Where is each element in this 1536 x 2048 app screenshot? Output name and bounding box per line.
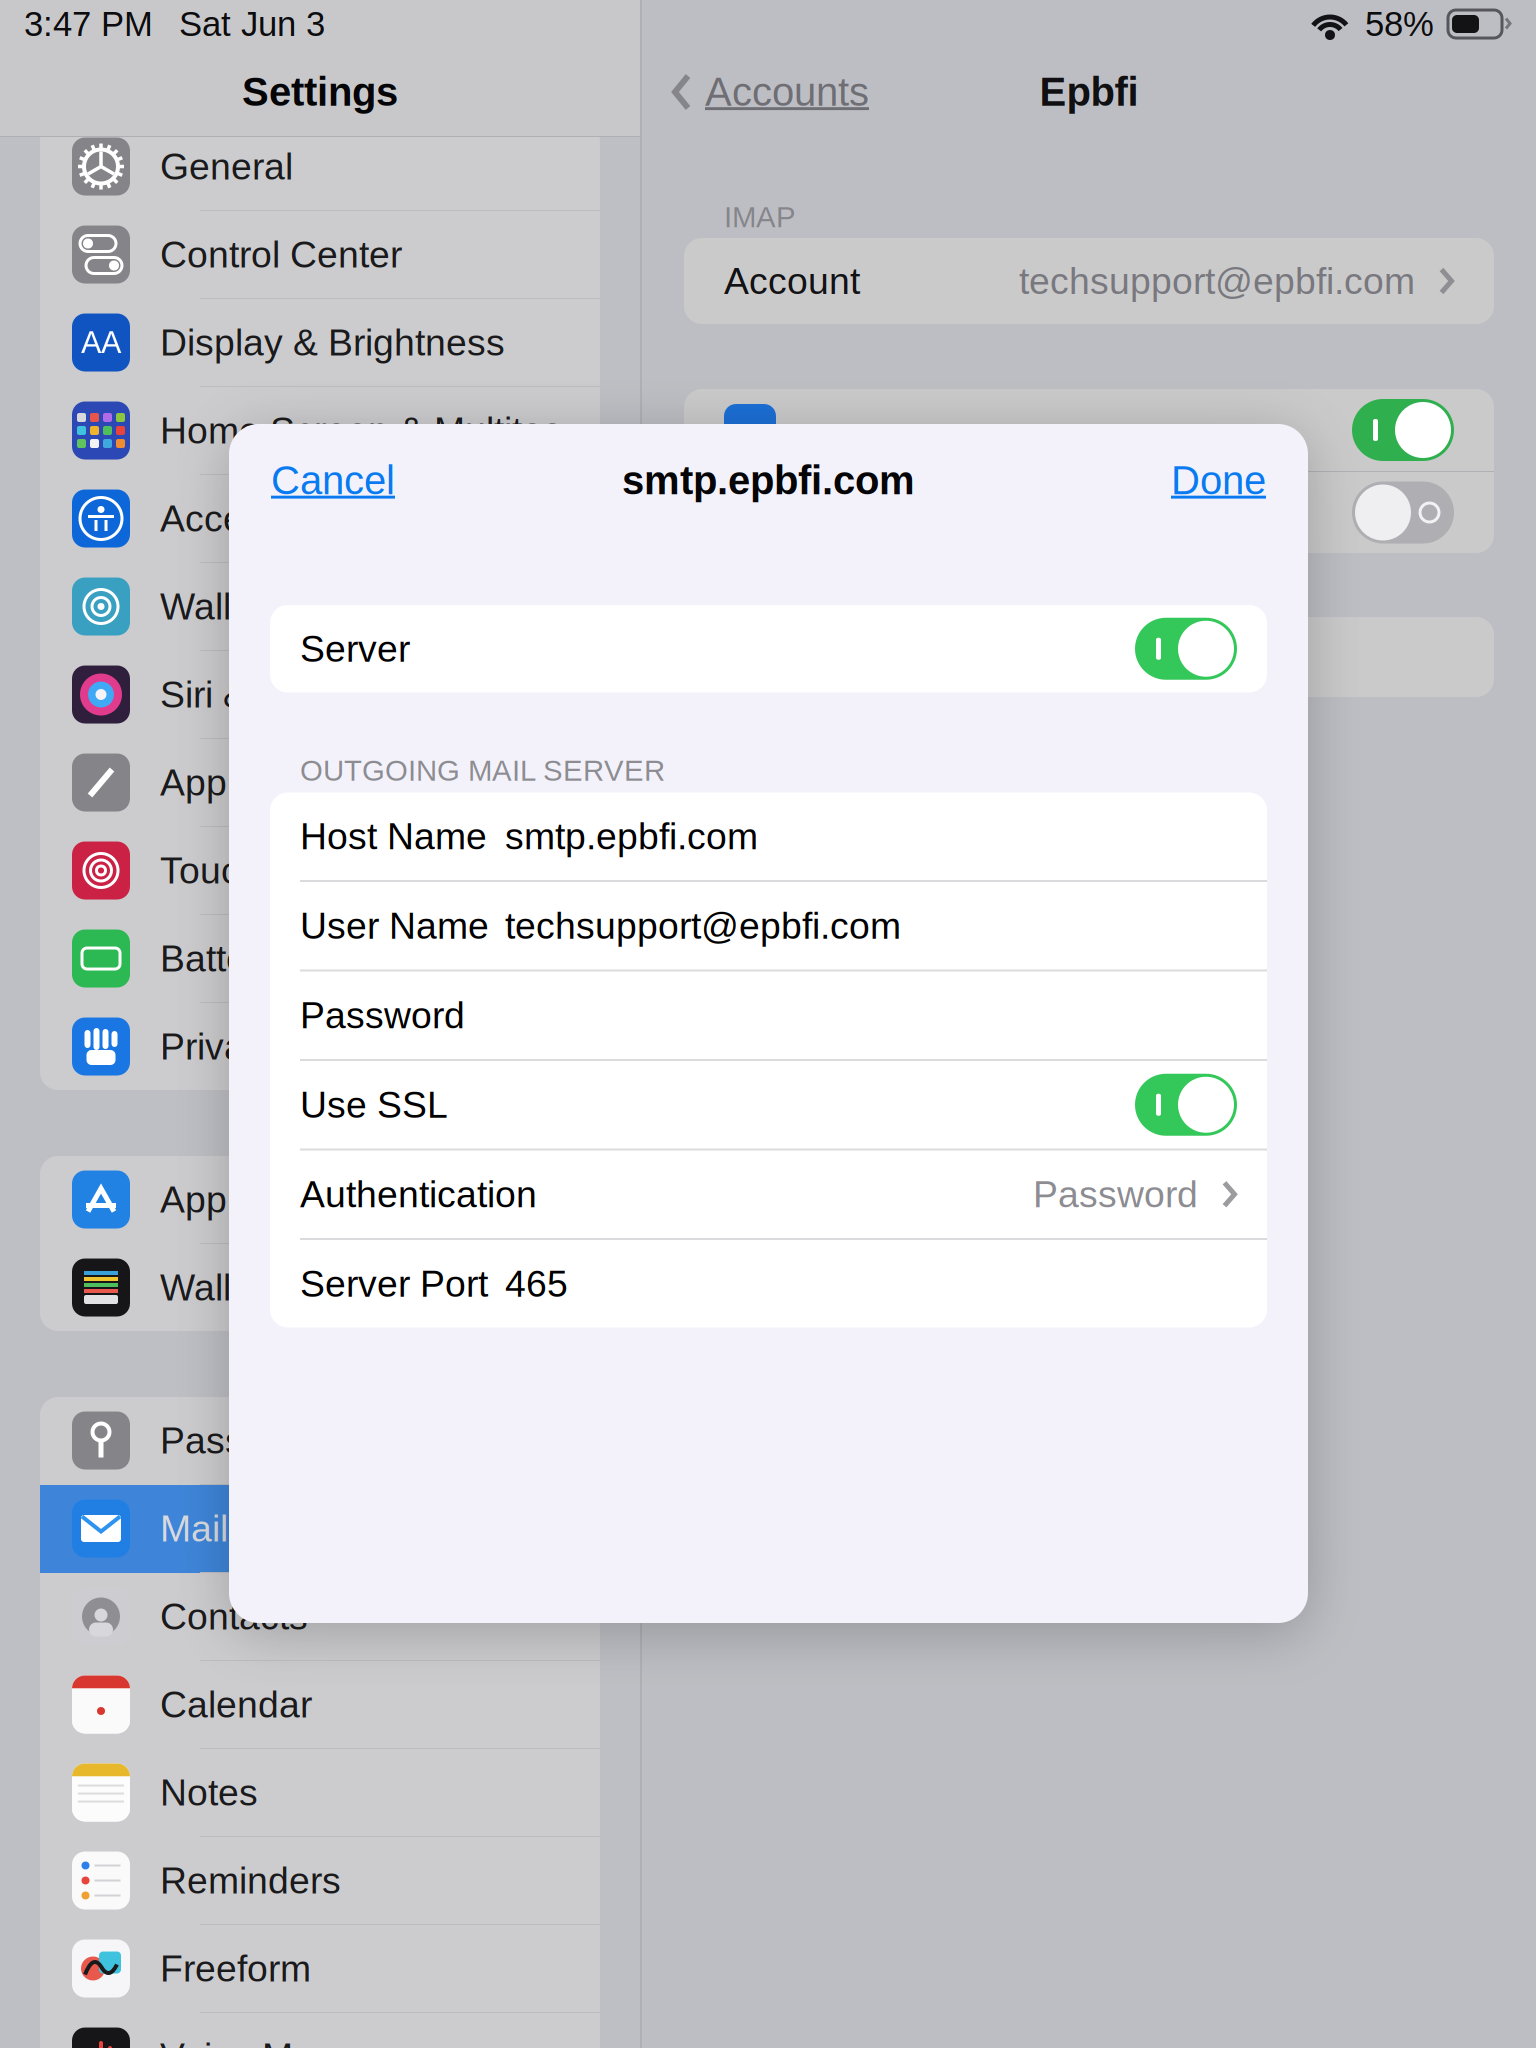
staticText: Server Port bbox=[300, 1263, 488, 1305]
staticText: techsupport@epbfi.com bbox=[1019, 260, 1415, 302]
staticText: Siri & Search bbox=[160, 674, 377, 715]
staticText: AA bbox=[81, 325, 121, 360]
staticText: Server bbox=[300, 628, 410, 670]
button[interactable]: Host Name bbox=[270, 792, 1267, 880]
button[interactable]: Control Center bbox=[40, 211, 600, 299]
button[interactable]: Battery bbox=[40, 915, 600, 1003]
staticText: Home Screen & Multitasking bbox=[160, 410, 600, 451]
button[interactable]: Authentication bbox=[270, 1150, 1267, 1238]
staticText: Host Name bbox=[300, 815, 487, 857]
button[interactable]: Contacts bbox=[40, 1573, 600, 1661]
staticText: General bbox=[160, 146, 293, 187]
staticText: Contacts bbox=[160, 1596, 308, 1637]
button[interactable]: Voice Memos bbox=[40, 2013, 600, 2048]
staticText: Password bbox=[1033, 1173, 1198, 1215]
button[interactable]: Server Port bbox=[270, 1240, 1267, 1327]
button[interactable]: Notes bbox=[40, 1749, 600, 1837]
staticText: OUTGOING MAIL SERVER bbox=[300, 754, 665, 787]
button[interactable]: Mail account enabled bbox=[684, 389, 1494, 471]
button[interactable]: AA bbox=[40, 299, 600, 387]
staticText: Account bbox=[724, 260, 860, 302]
staticText: Voice Memos bbox=[160, 2036, 385, 2048]
staticText: Privacy & Security bbox=[160, 1026, 463, 1067]
staticText: Control Center bbox=[160, 234, 402, 275]
staticText: Calendar bbox=[160, 1684, 312, 1725]
staticText: 3:47 PM bbox=[24, 5, 153, 43]
button[interactable]: Calendar bbox=[40, 1661, 600, 1749]
staticText: Use SSL bbox=[300, 1084, 448, 1126]
button[interactable]: Password bbox=[270, 971, 1267, 1059]
button[interactable]: Freeform bbox=[40, 1925, 600, 2013]
staticText: Touch ID & Passcode bbox=[160, 850, 519, 891]
button[interactable]: Apple Pencil bbox=[40, 739, 600, 827]
staticText: Wallet bbox=[160, 1267, 262, 1308]
staticText: Passwords bbox=[160, 1420, 344, 1461]
staticText: Password bbox=[300, 994, 465, 1036]
staticText: Freeform bbox=[160, 1948, 311, 1989]
button[interactable]: Home Screen & Multitasking bbox=[40, 387, 600, 475]
staticText: Sat Jun 3 bbox=[179, 5, 325, 43]
staticText: Cancel bbox=[271, 458, 395, 503]
staticText: Done bbox=[1171, 458, 1266, 503]
staticText: Reminders bbox=[160, 1860, 341, 1901]
staticText: Wallpaper bbox=[160, 586, 327, 627]
button[interactable]: Passwords bbox=[40, 1397, 600, 1485]
button[interactable]: Reminders bbox=[40, 1837, 600, 1925]
button[interactable]: Mail bbox=[40, 1485, 600, 1573]
staticText: techsupport@epbfi.com bbox=[505, 905, 901, 947]
button[interactable]: Account bbox=[642, 238, 1536, 324]
staticText: Apple Pencil bbox=[160, 762, 368, 803]
staticText: 465 bbox=[505, 1263, 568, 1305]
button[interactable]: Accessibility bbox=[40, 475, 600, 563]
staticText: Battery bbox=[160, 938, 278, 979]
button[interactable]: Cancel bbox=[229, 444, 415, 517]
button[interactable]: Touch ID & Passcode bbox=[40, 827, 600, 915]
button[interactable]: Notes sync disabled bbox=[684, 472, 1494, 553]
button[interactable]: Done bbox=[1151, 444, 1308, 517]
staticText: 58% bbox=[1365, 5, 1434, 43]
button[interactable]: App Store bbox=[40, 1156, 600, 1244]
button[interactable]: Server bbox=[270, 605, 1267, 692]
button[interactable]: Accounts bbox=[642, 58, 869, 126]
button[interactable]: Siri & Search bbox=[40, 651, 600, 739]
button[interactable]: Use SSL bbox=[270, 1061, 1267, 1148]
staticText: Accounts bbox=[705, 70, 869, 114]
staticText: smtp.epbfi.com bbox=[505, 815, 758, 857]
button[interactable]: Wallpaper bbox=[40, 563, 600, 651]
button[interactable]: Privacy & Security bbox=[40, 1003, 600, 1090]
button[interactable]: Wallet bbox=[40, 1244, 600, 1331]
staticText: Epbfi bbox=[1039, 70, 1138, 114]
button[interactable]: User Name bbox=[270, 882, 1267, 969]
staticText: Authentication bbox=[300, 1173, 537, 1215]
staticText: User Name bbox=[300, 905, 489, 947]
staticText: Settings bbox=[242, 70, 398, 114]
staticText: Notes bbox=[160, 1772, 258, 1813]
staticText: Mail bbox=[160, 1508, 228, 1549]
button[interactable]: General bbox=[40, 123, 600, 211]
staticText: smtp.epbfi.com bbox=[622, 458, 915, 503]
staticText: Accessibility bbox=[160, 498, 364, 539]
staticText: App Store bbox=[160, 1179, 326, 1220]
staticText: IMAP bbox=[724, 201, 796, 233]
staticText: Display & Brightness bbox=[160, 322, 505, 363]
